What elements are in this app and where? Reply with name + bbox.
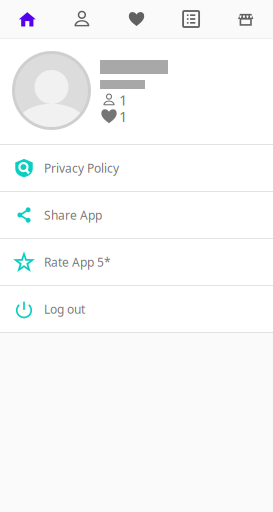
- button[interactable]: Log out: [0, 286, 273, 333]
- button[interactable]: Share App: [0, 192, 273, 239]
- button[interactable]: Privacy Policy: [0, 145, 273, 192]
- button[interactable]: Favorites: [109, 0, 164, 38]
- button[interactable]: Orders: [164, 0, 218, 38]
- button[interactable]: Home: [0, 0, 55, 38]
- staticText: 1: [119, 90, 127, 109]
- button[interactable]: Shop: [218, 0, 273, 38]
- staticText: Rate App 5*: [44, 254, 111, 270]
- staticText: Log out: [44, 301, 85, 317]
- staticText: 1: [119, 106, 127, 126]
- staticText: Share App: [44, 207, 102, 223]
- staticText: Privacy Policy: [44, 160, 119, 176]
- button[interactable]: Profile: [55, 0, 109, 38]
- button[interactable]: Rate App 5*: [0, 239, 273, 286]
